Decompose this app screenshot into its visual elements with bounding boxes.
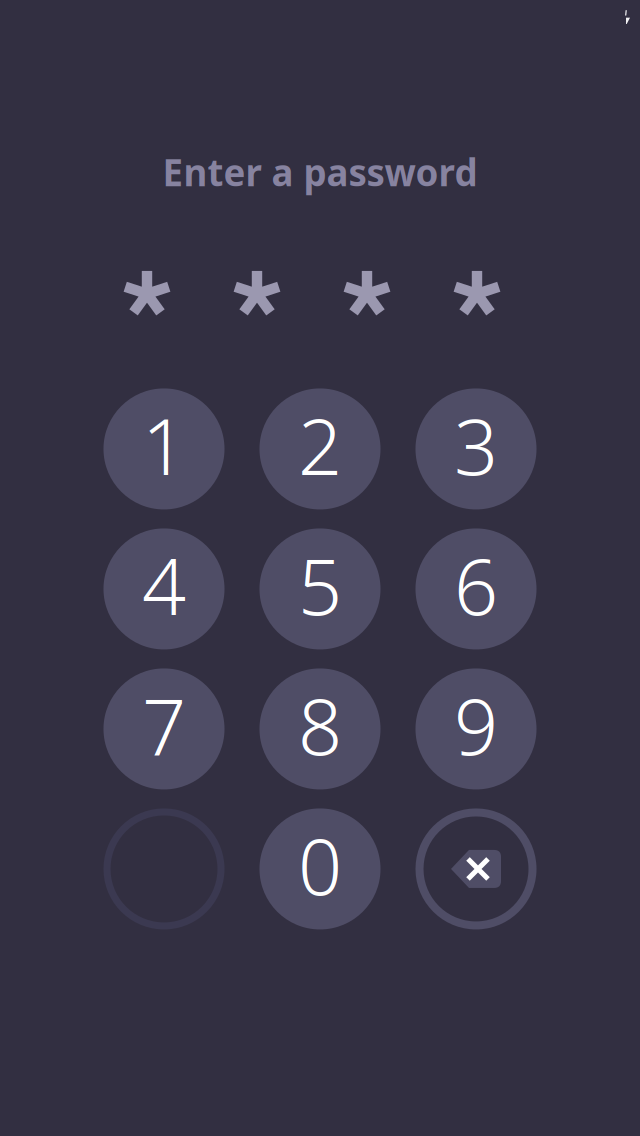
- staticText: 0: [298, 812, 342, 918]
- staticText: 6: [454, 532, 498, 638]
- staticText: 7: [142, 672, 186, 778]
- staticText: 5: [298, 532, 342, 638]
- button[interactable]: 9: [398, 659, 554, 799]
- staticText: 3: [454, 392, 498, 498]
- button[interactable]: 2: [242, 379, 398, 519]
- button[interactable]: 5: [242, 519, 398, 659]
- staticText: 9: [454, 672, 498, 778]
- staticText: 8: [298, 672, 342, 778]
- button[interactable]: 0: [242, 799, 398, 939]
- button[interactable]: 8: [242, 659, 398, 799]
- button[interactable]: 3: [398, 379, 554, 519]
- button[interactable]: 4: [86, 519, 242, 659]
- button[interactable]: 7: [86, 659, 242, 799]
- button[interactable]: 1: [86, 379, 242, 519]
- button[interactable]: 6: [398, 519, 554, 659]
- staticText: 2: [298, 392, 342, 498]
- staticText: Enter a password: [162, 147, 477, 197]
- staticText: 4: [142, 532, 186, 638]
- staticText: 1: [142, 392, 186, 498]
- button[interactable]: Delete: [398, 799, 554, 939]
